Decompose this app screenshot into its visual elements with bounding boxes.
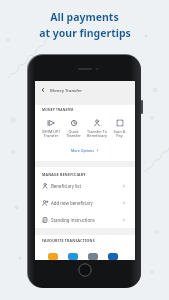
staticText: Transfer To Beneficiary bbox=[87, 129, 107, 138]
button[interactable]: Add new beneficiary bbox=[35, 194, 135, 211]
staticText: MANAGE BENEFICIARY bbox=[42, 172, 86, 177]
button[interactable]: More Options bbox=[35, 148, 135, 153]
button[interactable]: Back bbox=[40, 87, 46, 93]
staticText: Quick Transfer bbox=[66, 129, 81, 138]
button[interactable]: Favourite transaction 2 bbox=[88, 253, 98, 260]
staticText: FAVOURITE TRANSACTIONS bbox=[42, 238, 95, 243]
button[interactable]: BHIM UPI Transfer bbox=[39, 119, 62, 138]
staticText: Money Transfer bbox=[50, 87, 83, 93]
button[interactable]: Quick Transfer bbox=[62, 119, 85, 138]
button[interactable]: Scan & Pay bbox=[108, 119, 131, 138]
button[interactable]: Beneficiary list bbox=[35, 178, 135, 194]
staticText: Add new beneficiary bbox=[51, 200, 93, 206]
staticText: MONEY TRANSFER bbox=[42, 108, 74, 112]
staticText: Standing instructions bbox=[51, 217, 95, 223]
button[interactable]: Standing instructions bbox=[35, 211, 135, 228]
button[interactable]: Favourite transaction 0 bbox=[48, 253, 58, 260]
button[interactable]: Favourite transaction 3 bbox=[108, 253, 118, 260]
staticText: All payments bbox=[50, 10, 119, 24]
staticText: Beneficiary list bbox=[51, 183, 82, 189]
staticText: BHIM UPI Transfer bbox=[42, 129, 60, 138]
staticText: at your fingertips bbox=[39, 26, 131, 40]
staticText: More Options bbox=[71, 148, 94, 153]
staticText: Scan & Pay bbox=[113, 129, 126, 138]
button[interactable]: Transfer To Beneficiary bbox=[85, 119, 108, 138]
button[interactable]: Favourite transaction 1 bbox=[68, 253, 78, 260]
